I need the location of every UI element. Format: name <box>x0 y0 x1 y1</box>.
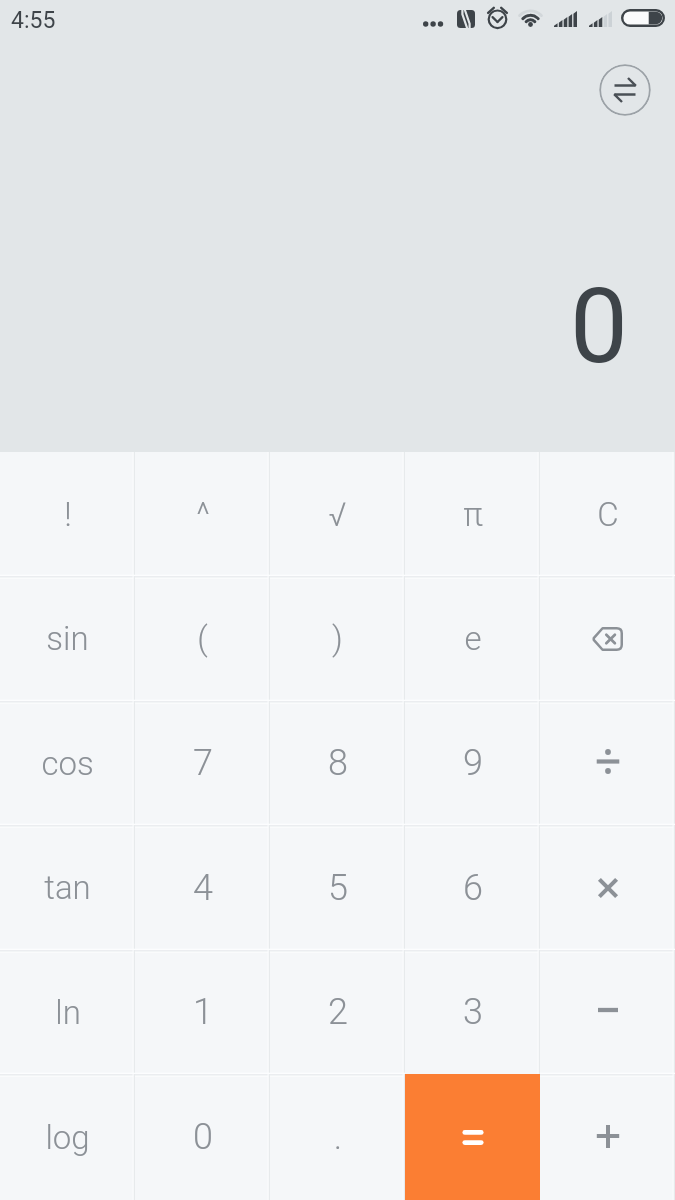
button[interactable]: 7 <box>135 701 270 825</box>
staticText: e <box>464 619 482 658</box>
button[interactable]: Divide <box>540 701 675 825</box>
staticText: ( <box>197 619 208 658</box>
staticText: 6 <box>463 867 483 909</box>
staticText: 0 <box>193 1116 213 1158</box>
button[interactable]: Switch calculator mode <box>599 64 651 116</box>
staticText: sin <box>46 619 89 658</box>
button[interactable]: 6 <box>405 825 540 950</box>
button[interactable]: Multiply <box>540 825 675 950</box>
staticText: ^ <box>196 495 210 534</box>
button[interactable]: ln <box>0 950 135 1074</box>
staticText: 3 <box>463 991 483 1033</box>
staticText: 7 <box>193 742 213 784</box>
staticText: 4:55 <box>11 7 56 34</box>
staticText: 9 <box>463 742 483 784</box>
staticText: cos <box>41 744 94 783</box>
staticText: 1 <box>193 991 213 1033</box>
button[interactable]: ^ <box>135 452 270 576</box>
button[interactable]: 9 <box>405 701 540 825</box>
staticText: C <box>597 495 619 534</box>
staticText: tan <box>44 868 91 907</box>
button[interactable]: 4 <box>135 825 270 950</box>
staticText: 8 <box>328 742 348 784</box>
button[interactable]: e <box>405 576 540 701</box>
staticText: ! <box>64 495 72 534</box>
button[interactable]: tan <box>0 825 135 950</box>
button[interactable]: 5 <box>270 825 405 950</box>
staticText: ln <box>55 993 81 1032</box>
button[interactable]: Equals <box>405 1074 540 1200</box>
button[interactable]: sin <box>0 576 135 701</box>
staticText: 0 <box>570 266 628 387</box>
staticText: π <box>463 495 483 534</box>
button[interactable]: 1 <box>135 950 270 1074</box>
button[interactable]: √ <box>270 452 405 576</box>
staticText: 2 <box>328 991 348 1033</box>
staticText: ) <box>332 619 343 658</box>
button[interactable]: cos <box>0 701 135 825</box>
button[interactable]: Minus <box>540 950 675 1074</box>
staticText: 4 <box>193 867 213 909</box>
staticText: . <box>334 1118 342 1157</box>
button[interactable]: ! <box>0 452 135 576</box>
button[interactable]: 0 <box>135 1074 270 1200</box>
staticText: 5 <box>328 867 348 909</box>
button[interactable]: log <box>0 1074 135 1200</box>
button[interactable]: 8 <box>270 701 405 825</box>
button[interactable]: π <box>405 452 540 576</box>
button[interactable]: 2 <box>270 950 405 1074</box>
button[interactable]: Backspace <box>540 576 675 701</box>
staticText: log <box>45 1118 90 1157</box>
button[interactable]: 3 <box>405 950 540 1074</box>
button[interactable]: C <box>540 452 675 576</box>
button[interactable]: Plus <box>540 1074 675 1200</box>
button[interactable]: ) <box>270 576 405 701</box>
button[interactable]: ( <box>135 576 270 701</box>
staticText: √ <box>328 495 347 534</box>
